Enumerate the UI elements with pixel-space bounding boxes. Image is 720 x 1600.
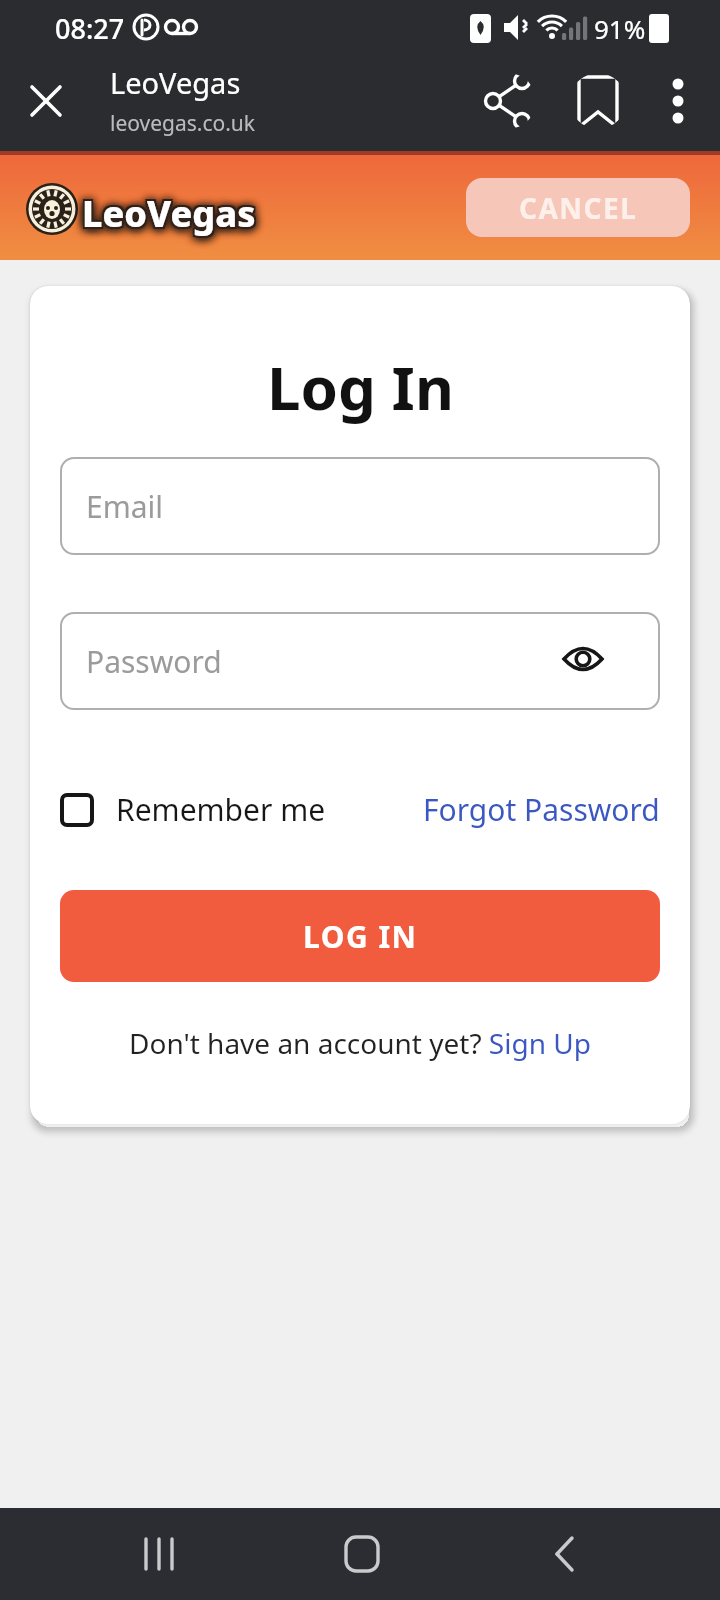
staticText: Email [86, 486, 164, 527]
button[interactable] [322, 1514, 402, 1594]
staticText: leovegas.co.uk [110, 109, 256, 138]
button[interactable] [60, 793, 94, 827]
button[interactable] [480, 73, 536, 129]
button[interactable]: Password [60, 612, 660, 710]
staticText: LOG IN [303, 916, 418, 957]
staticText: LeoVegas [84, 189, 258, 238]
staticText: 91% [594, 11, 646, 46]
staticText: Don't have an account yet? Sign Up [129, 1024, 591, 1062]
staticText: Remember me [116, 789, 326, 830]
button[interactable] [18, 73, 74, 129]
staticText: LeoVegas [82, 189, 256, 238]
button[interactable]: Don't have an account yet? Sign Up [30, 1024, 690, 1062]
button[interactable]: LOG IN [60, 890, 660, 982]
staticText: Log In [267, 346, 454, 428]
staticText: LeoVegas [84, 187, 258, 236]
staticText: LeoVegas [82, 191, 256, 240]
button[interactable] [525, 1514, 605, 1594]
staticText: Forgot Password [423, 789, 660, 830]
staticText: LeoVegas [82, 187, 256, 236]
button[interactable] [120, 1514, 200, 1594]
staticText: LeoVegas [80, 191, 254, 240]
button[interactable] [570, 73, 626, 129]
staticText: CANCEL [519, 189, 638, 227]
button[interactable]: Email [60, 457, 660, 555]
staticText: 08:27 [55, 10, 125, 47]
button[interactable] [652, 73, 704, 125]
staticText: LeoVegas [110, 63, 241, 102]
staticText: LeoVegas [80, 187, 254, 236]
staticText: LeoVegas [80, 189, 254, 238]
button[interactable]: Forgot Password [423, 789, 660, 830]
staticText: Password [86, 641, 222, 682]
button[interactable]: CANCEL [466, 178, 690, 237]
staticText: LeoVegas [84, 191, 258, 240]
